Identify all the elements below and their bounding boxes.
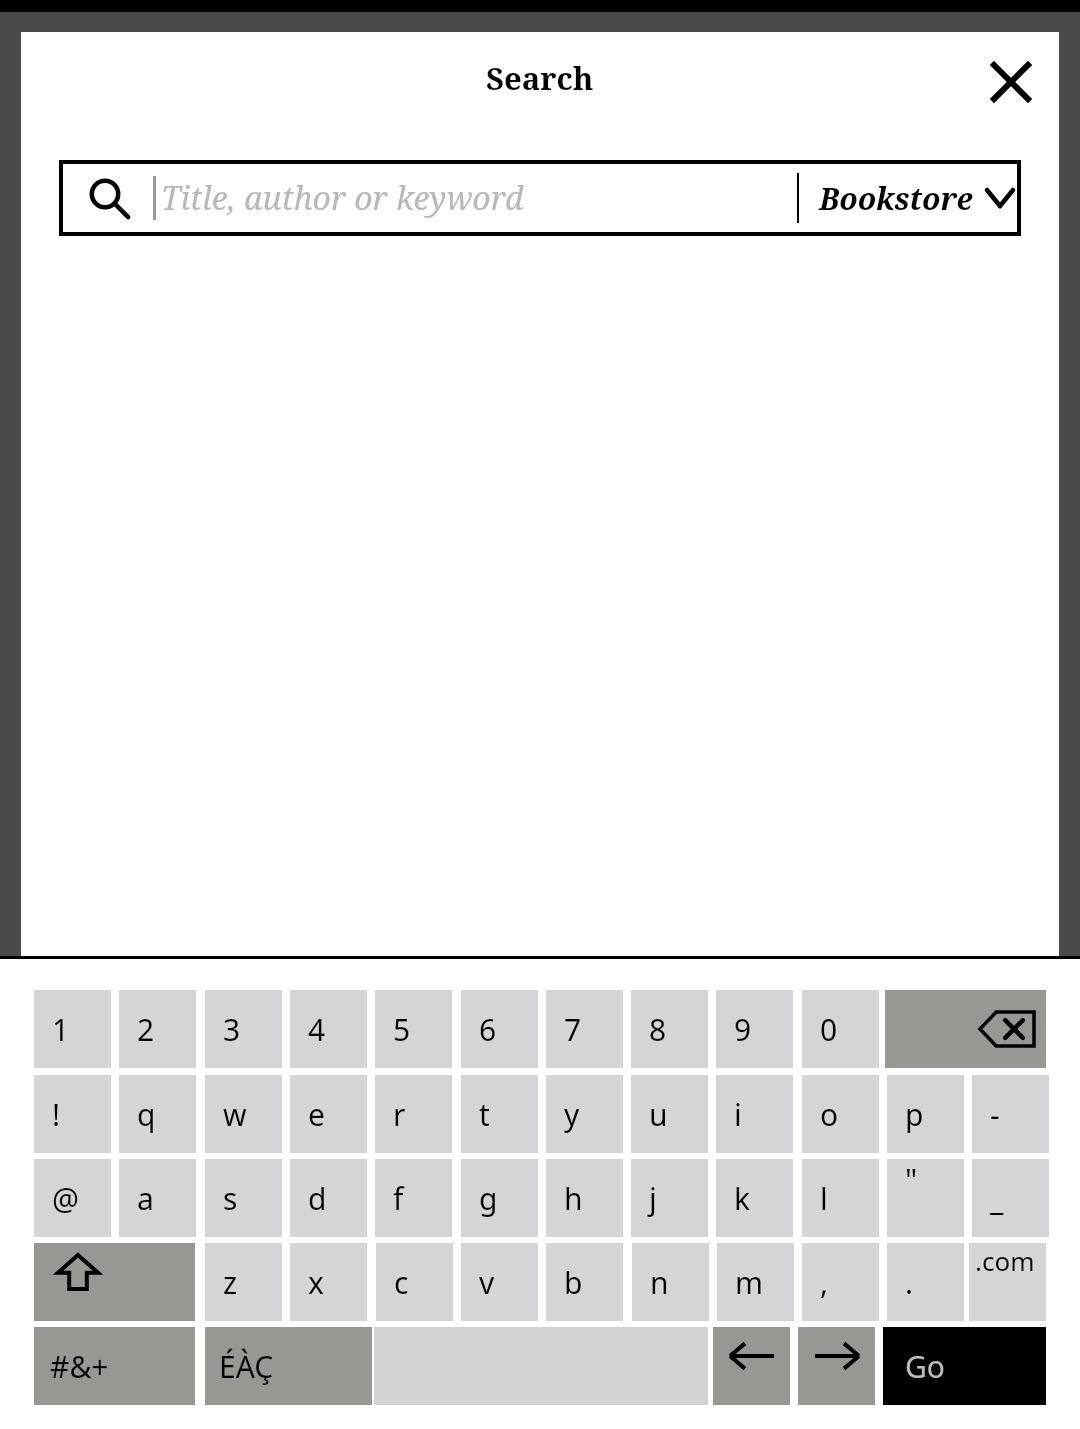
button[interactable]: ! bbox=[34, 1075, 111, 1153]
button[interactable]: a bbox=[119, 1159, 196, 1237]
staticText: Search bbox=[486, 57, 594, 99]
button[interactable]: b bbox=[546, 1243, 623, 1321]
staticText: a bbox=[137, 1178, 154, 1219]
button[interactable]: ÉÀÇ bbox=[205, 1327, 372, 1405]
button[interactable]: " bbox=[887, 1159, 964, 1237]
button[interactable]: c bbox=[376, 1243, 453, 1321]
button[interactable]: r bbox=[375, 1075, 452, 1153]
button[interactable]: - bbox=[972, 1075, 1049, 1153]
button[interactable]: Move cursor right bbox=[798, 1327, 875, 1405]
button[interactable]: q bbox=[119, 1075, 196, 1153]
staticText: r bbox=[393, 1094, 406, 1135]
staticText: #&+ bbox=[50, 1346, 109, 1387]
staticText: 2 bbox=[137, 1009, 155, 1050]
button[interactable]: 9 bbox=[716, 990, 793, 1068]
staticText: - bbox=[990, 1094, 1000, 1135]
staticText: g bbox=[479, 1178, 498, 1219]
button[interactable]: #&+ bbox=[34, 1327, 195, 1405]
staticText: u bbox=[649, 1094, 668, 1135]
staticText: s bbox=[223, 1178, 238, 1219]
staticText: t bbox=[479, 1094, 490, 1135]
staticText: @ bbox=[52, 1178, 79, 1219]
staticText: 6 bbox=[479, 1009, 497, 1050]
button[interactable]: i bbox=[716, 1075, 793, 1153]
button[interactable]: j bbox=[631, 1159, 708, 1237]
staticText: d bbox=[308, 1178, 327, 1219]
staticText: .com bbox=[975, 1243, 1035, 1278]
button[interactable]: w bbox=[205, 1075, 282, 1153]
button[interactable]: .com bbox=[969, 1243, 1046, 1321]
staticText: 4 bbox=[308, 1009, 326, 1050]
staticText: z bbox=[223, 1262, 238, 1303]
button[interactable]: 2 bbox=[119, 990, 196, 1068]
button[interactable]: 4 bbox=[290, 990, 367, 1068]
button[interactable]: 8 bbox=[631, 990, 708, 1068]
button[interactable]: m bbox=[717, 1243, 794, 1321]
staticText: _ bbox=[990, 1178, 1004, 1219]
staticText: q bbox=[137, 1094, 156, 1135]
button[interactable]: , bbox=[802, 1243, 879, 1321]
button[interactable]: 1 bbox=[34, 990, 111, 1068]
staticText: h bbox=[564, 1178, 583, 1219]
staticText: Title, author or keyword bbox=[161, 176, 524, 220]
button[interactable]: Close bbox=[975, 46, 1047, 118]
staticText: Bookstore bbox=[819, 178, 973, 219]
button[interactable]: z bbox=[205, 1243, 282, 1321]
staticText: w bbox=[223, 1094, 247, 1135]
button[interactable]: d bbox=[290, 1159, 367, 1237]
button[interactable]: 3 bbox=[205, 990, 282, 1068]
button[interactable]: Move cursor left bbox=[713, 1327, 790, 1405]
staticText: ÉÀÇ bbox=[219, 1346, 274, 1387]
button[interactable]: Title, author or keyword bbox=[59, 160, 1021, 236]
button[interactable]: o bbox=[802, 1075, 879, 1153]
button[interactable]: . bbox=[887, 1243, 964, 1321]
button[interactable]: v bbox=[461, 1243, 538, 1321]
staticText: x bbox=[308, 1262, 324, 1303]
staticText: n bbox=[650, 1262, 669, 1303]
staticText: y bbox=[564, 1094, 580, 1135]
button[interactable]: 0 bbox=[802, 990, 879, 1068]
button[interactable]: y bbox=[546, 1075, 623, 1153]
button[interactable]: Go bbox=[883, 1327, 1046, 1405]
button[interactable]: f bbox=[375, 1159, 452, 1237]
button[interactable]: 6 bbox=[461, 990, 538, 1068]
button[interactable]: l bbox=[802, 1159, 879, 1237]
button[interactable]: x bbox=[290, 1243, 367, 1321]
button[interactable]: n bbox=[632, 1243, 709, 1321]
button[interactable]: s bbox=[205, 1159, 282, 1237]
staticText: 8 bbox=[649, 1009, 667, 1050]
button[interactable]: 7 bbox=[546, 990, 623, 1068]
button[interactable]: t bbox=[461, 1075, 538, 1153]
staticText: l bbox=[820, 1178, 828, 1219]
button[interactable]: _ bbox=[972, 1159, 1049, 1237]
button[interactable]: Backspace bbox=[885, 990, 1046, 1068]
staticText: e bbox=[308, 1094, 325, 1135]
button[interactable]: h bbox=[546, 1159, 623, 1237]
staticText: b bbox=[564, 1262, 583, 1303]
staticText: k bbox=[734, 1178, 751, 1219]
button[interactable]: @ bbox=[34, 1159, 111, 1237]
staticText: p bbox=[905, 1094, 924, 1135]
staticText: , bbox=[820, 1262, 829, 1303]
staticText: v bbox=[479, 1262, 495, 1303]
button[interactable]: u bbox=[631, 1075, 708, 1153]
button[interactable]: 5 bbox=[375, 990, 452, 1068]
staticText: 0 bbox=[820, 1009, 838, 1050]
staticText: 5 bbox=[393, 1009, 411, 1050]
staticText: i bbox=[734, 1094, 742, 1135]
staticText: m bbox=[735, 1262, 764, 1303]
button[interactable]: Shift bbox=[34, 1243, 195, 1321]
staticText: o bbox=[820, 1094, 839, 1135]
button[interactable]: k bbox=[716, 1159, 793, 1237]
button[interactable]: g bbox=[461, 1159, 538, 1237]
staticText: f bbox=[393, 1178, 404, 1219]
staticText: 3 bbox=[223, 1009, 241, 1050]
button[interactable]: Bookstore bbox=[807, 164, 1013, 232]
staticText: . bbox=[905, 1262, 914, 1303]
staticText: ! bbox=[52, 1094, 61, 1135]
staticText: 9 bbox=[734, 1009, 752, 1050]
staticText: " bbox=[905, 1159, 918, 1200]
button[interactable]: p bbox=[887, 1075, 964, 1153]
button[interactable]: e bbox=[290, 1075, 367, 1153]
